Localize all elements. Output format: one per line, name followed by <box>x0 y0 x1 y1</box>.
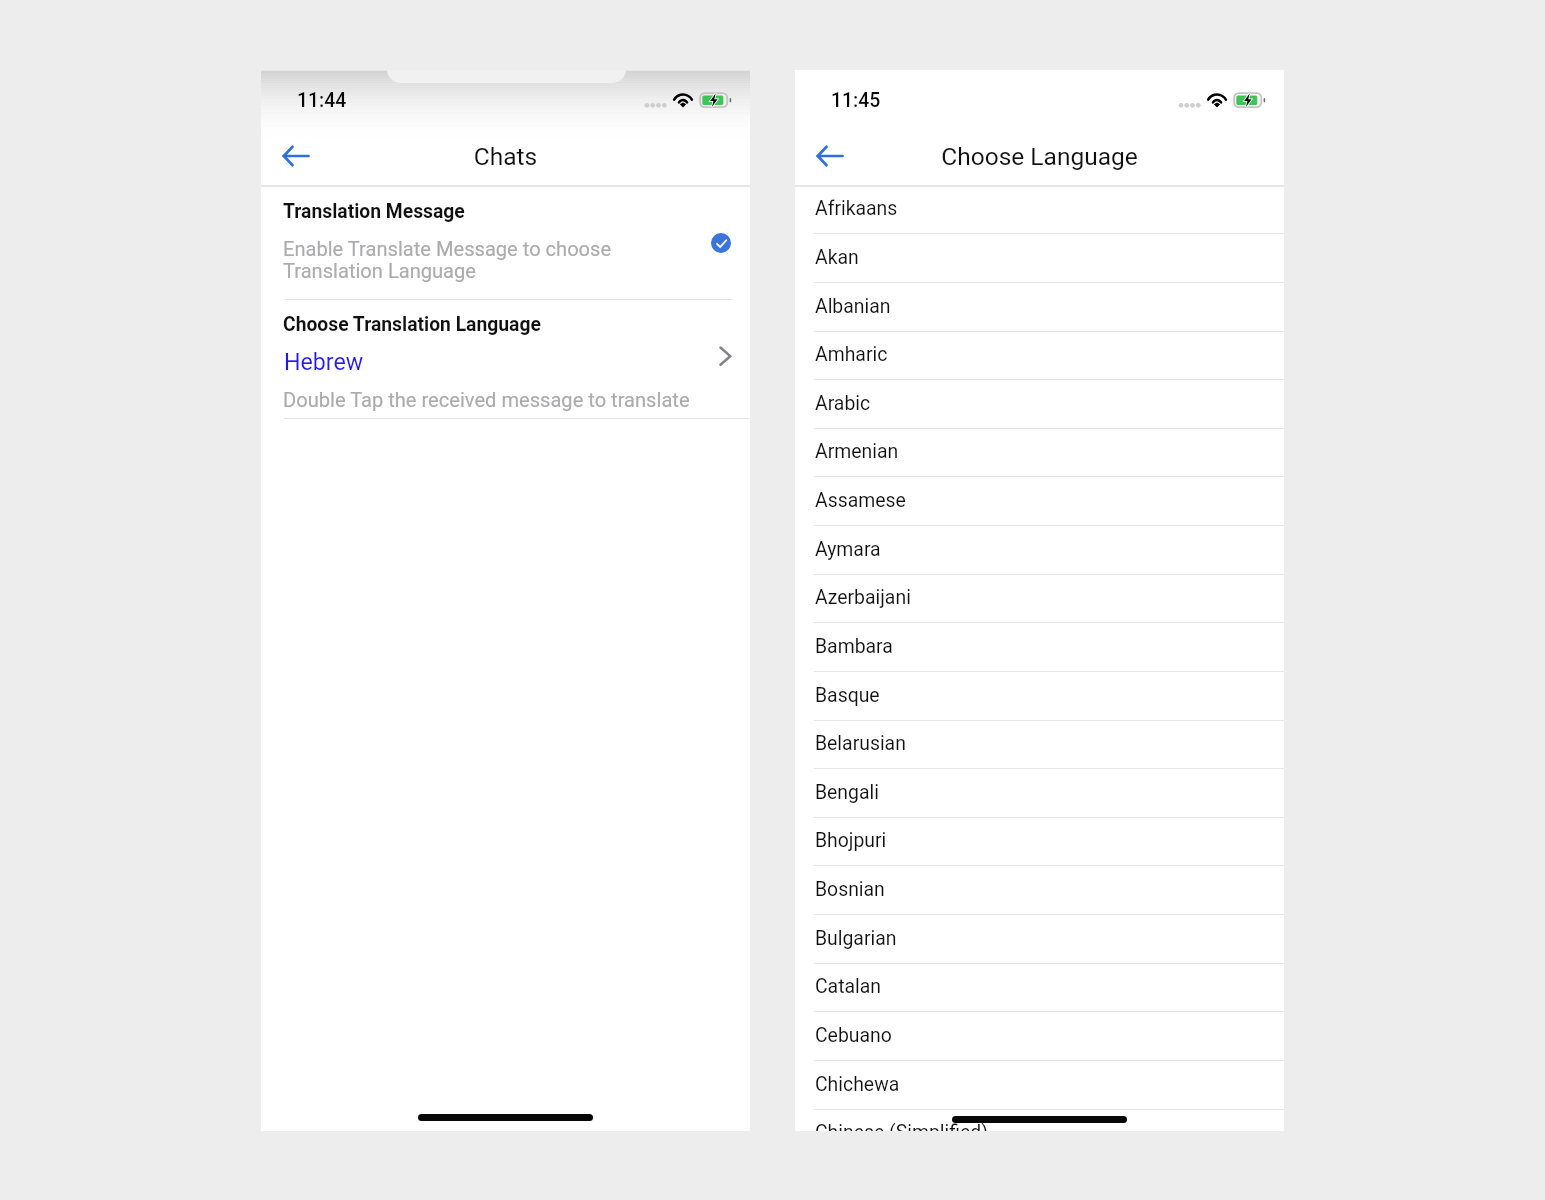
staticText: Catalan <box>815 975 882 998</box>
button[interactable]: Translation Message <box>261 186 750 300</box>
staticText: 11:45 <box>831 89 881 112</box>
button[interactable]: Chichewa <box>795 1061 1284 1110</box>
staticText: Akan <box>815 246 859 269</box>
button[interactable]: Arabic <box>795 380 1284 429</box>
staticText: Choose Language <box>795 142 1284 171</box>
staticText: Azerbaijani <box>815 586 911 609</box>
button[interactable]: Belarusian <box>795 720 1284 769</box>
button[interactable]: Afrikaans <box>795 185 1284 234</box>
staticText: Bosnian <box>815 878 885 901</box>
staticText: Bhojpuri <box>815 829 887 852</box>
button[interactable]: Bambara <box>795 623 1284 672</box>
staticText: Chats <box>261 142 750 171</box>
staticText: Chinese (Simplified) <box>815 1121 989 1131</box>
button[interactable]: Chinese (Simplified) <box>795 1109 1284 1131</box>
staticText: Assamese <box>815 489 906 512</box>
button[interactable]: Bosnian <box>795 866 1284 915</box>
button[interactable]: Aymara <box>795 526 1284 575</box>
staticText: Aymara <box>815 538 881 561</box>
staticText: Albanian <box>815 295 891 318</box>
button[interactable]: Cebuano <box>795 1012 1284 1061</box>
staticText: Belarusian <box>815 732 906 755</box>
button[interactable]: Bhojpuri <box>795 817 1284 866</box>
staticText: Armenian <box>815 440 899 463</box>
button[interactable]: Translation enabled <box>711 233 731 253</box>
staticText: Arabic <box>815 392 871 415</box>
staticText: Bengali <box>815 781 879 804</box>
button[interactable]: Armenian <box>795 428 1284 477</box>
staticText: Double Tap the received message to trans… <box>283 388 690 412</box>
button[interactable]: Back <box>806 132 854 180</box>
button[interactable]: Amharic <box>795 331 1284 380</box>
staticText: Chichewa <box>815 1073 900 1096</box>
staticText: Amharic <box>815 343 888 366</box>
staticText: 11:44 <box>297 89 347 112</box>
button[interactable]: Akan <box>795 234 1284 283</box>
staticText: Basque <box>815 684 880 707</box>
staticText: Cebuano <box>815 1024 892 1047</box>
button[interactable]: Basque <box>795 672 1284 721</box>
button[interactable]: Catalan <box>795 963 1284 1012</box>
button[interactable]: Bulgarian <box>795 915 1284 964</box>
staticText: Choose Translation Language <box>283 313 541 336</box>
button[interactable]: Assamese <box>795 477 1284 526</box>
button[interactable]: Albanian <box>795 283 1284 332</box>
staticText: Bambara <box>815 635 893 658</box>
staticText: Enable Translate Message to choose <box>283 237 612 261</box>
staticText: Translation Message <box>283 200 465 223</box>
button[interactable]: Choose Translation Language <box>261 301 750 417</box>
button[interactable]: Azerbaijani <box>795 574 1284 623</box>
staticText: Translation Language <box>283 259 476 283</box>
staticText: Hebrew <box>284 348 364 375</box>
button[interactable]: Back <box>272 132 320 180</box>
button[interactable]: Bengali <box>795 769 1284 818</box>
staticText: Bulgarian <box>815 927 897 950</box>
staticText: Afrikaans <box>815 197 898 220</box>
